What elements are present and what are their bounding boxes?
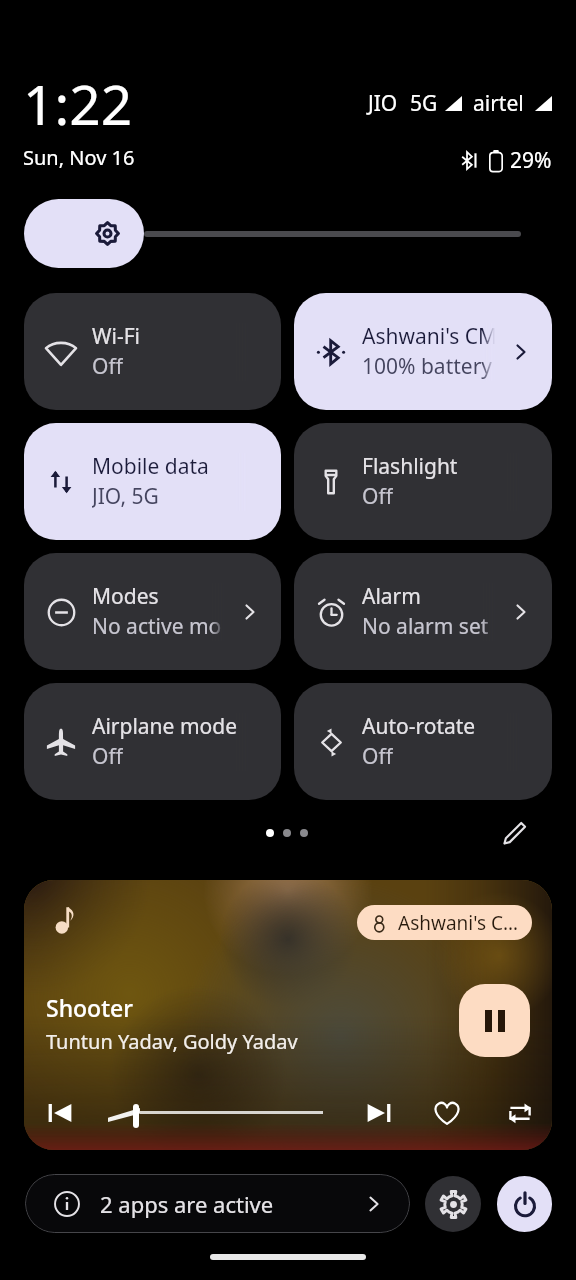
staticText: Off: [362, 482, 393, 510]
staticText: Ashwani's C…: [398, 910, 519, 936]
staticText: Alarm: [362, 582, 421, 611]
staticText: JIO: [368, 89, 398, 118]
button[interactable]: Mobile data: [24, 423, 281, 540]
staticText: No active mo: [92, 612, 222, 640]
staticText: Off: [92, 352, 123, 380]
staticText: 5G: [410, 89, 438, 118]
button[interactable]: Ashwani's CM: [294, 293, 552, 410]
button[interactable]: Favorite: [431, 1097, 463, 1129]
button[interactable]: Flashlight: [294, 423, 552, 540]
button[interactable]: Auto-rotate: [294, 683, 552, 800]
staticText: Off: [92, 742, 123, 770]
button[interactable]: Modes: [24, 553, 281, 670]
staticText: JIO, 5G: [92, 482, 159, 510]
staticText: Flashlight: [362, 452, 458, 481]
button[interactable]: Wi-Fi: [24, 293, 281, 410]
staticText: 2 apps are active: [100, 1189, 274, 1219]
staticText: Shooter: [46, 992, 133, 1023]
staticText: Sun, Nov 16: [23, 144, 135, 171]
staticText: Ashwani's CM: [362, 322, 498, 351]
button[interactable]: Settings: [425, 1176, 481, 1232]
staticText: 1:22: [23, 66, 133, 141]
button[interactable]: Next: [364, 1098, 394, 1128]
button[interactable]: Edit tiles: [500, 820, 530, 846]
button[interactable]: Repeat: [504, 1097, 536, 1129]
button[interactable]: Power: [497, 1176, 552, 1232]
button[interactable]: Pause: [459, 984, 530, 1057]
staticText: Auto-rotate: [362, 712, 476, 741]
button[interactable]: Airplane mode: [24, 683, 281, 800]
staticText: Airplane mode: [92, 712, 238, 741]
button[interactable]: Previous: [45, 1098, 75, 1128]
staticText: Tuntun Yadav, Goldy Yadav: [46, 1028, 298, 1055]
staticText: Off: [362, 742, 393, 770]
button[interactable]: Brightness: [24, 199, 144, 268]
staticText: 29%: [510, 146, 552, 175]
staticText: Mobile data: [92, 452, 209, 481]
button[interactable]: Ashwani's C…: [24, 880, 552, 1150]
staticText: No alarm set: [362, 612, 489, 640]
staticText: Modes: [92, 582, 159, 611]
button[interactable]: Alarm: [294, 553, 552, 670]
button[interactable]: Ashwani's C…: [357, 905, 532, 940]
staticText: airtel: [473, 89, 524, 118]
staticText: Wi-Fi: [92, 322, 141, 351]
staticText: 100% battery: [362, 352, 493, 380]
button[interactable]: 2 apps are active: [25, 1174, 410, 1233]
